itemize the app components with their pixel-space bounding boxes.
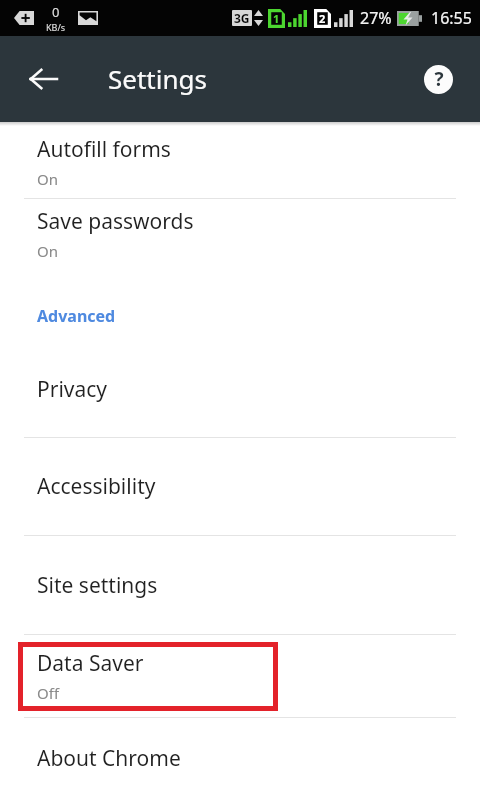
staticText: 3G (234, 10, 250, 26)
button[interactable]: Help and feedback (414, 55, 462, 103)
staticText: On (37, 241, 58, 261)
staticText: Privacy (37, 375, 108, 404)
staticText: 1 (273, 11, 280, 26)
staticText: 27% (360, 7, 392, 29)
button[interactable]: Autofill forms (0, 126, 480, 198)
button[interactable]: Accessibility (0, 438, 480, 535)
staticText: Advanced (37, 305, 116, 327)
staticText: Off (37, 683, 60, 703)
staticText: About Chrome (37, 744, 181, 773)
button[interactable]: Data Saver (0, 635, 480, 717)
staticText: On (37, 169, 58, 189)
staticText: 16:55 (431, 7, 472, 29)
button[interactable]: Privacy (0, 341, 480, 437)
button[interactable]: About Chrome (0, 718, 480, 798)
staticText: ? (434, 66, 444, 92)
staticText: Accessibility (37, 472, 156, 501)
staticText: Settings (108, 61, 207, 96)
staticText: Autofill forms (37, 135, 171, 164)
staticText: Site settings (37, 571, 158, 600)
staticText: 2 (319, 11, 326, 26)
button[interactable]: Save passwords (0, 199, 480, 269)
staticText: KB/s (46, 21, 66, 33)
button[interactable]: Site settings (0, 536, 480, 634)
staticText: Data Saver (37, 649, 144, 678)
staticText: 0 (52, 3, 60, 21)
staticText: Save passwords (37, 207, 194, 236)
button[interactable]: Navigate up (17, 53, 69, 105)
